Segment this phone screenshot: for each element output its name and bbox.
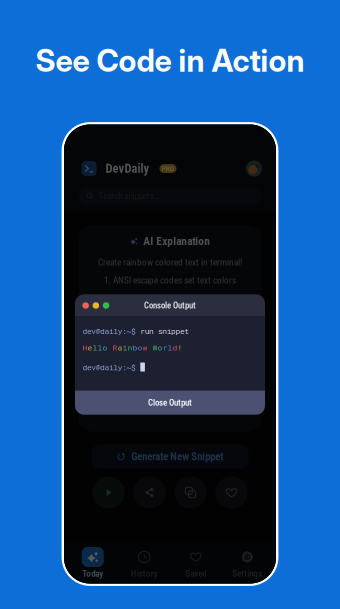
- staticText: Settings: [232, 568, 262, 579]
- staticText: Today: [82, 568, 103, 579]
- staticText: Console Output: [144, 300, 196, 311]
- button[interactable]: Close Output: [75, 391, 265, 415]
- staticText: History: [131, 568, 158, 579]
- staticText: W: [152, 342, 157, 353]
- staticText: DevDaily: [105, 161, 149, 176]
- button[interactable]: Generate New Snippet: [91, 444, 248, 468]
- staticText: PRO: [161, 164, 174, 173]
- button[interactable]: Settings: [221, 546, 273, 579]
- staticText: o: [137, 342, 142, 353]
- button[interactable]: History: [118, 546, 170, 579]
- staticText: Saved: [185, 568, 206, 579]
- staticText: b: [132, 342, 137, 353]
- staticText: H: [82, 342, 87, 353]
- staticText: o: [102, 342, 107, 353]
- staticText: AI Explanation: [143, 234, 210, 248]
- staticText: R: [112, 342, 117, 353]
- staticText: l: [97, 342, 102, 353]
- staticText: See Code in Action: [35, 42, 304, 79]
- staticText: o: [157, 342, 162, 353]
- staticText: d: [172, 342, 177, 353]
- button[interactable]: Saved: [170, 546, 221, 579]
- staticText: l: [167, 342, 172, 353]
- staticText: l: [92, 342, 97, 353]
- staticText: w: [142, 342, 147, 353]
- staticText: Close Output: [148, 397, 192, 408]
- staticText: n: [127, 342, 132, 353]
- button[interactable]: Run snippet: [92, 476, 124, 508]
- button[interactable]: Today: [67, 546, 118, 579]
- button[interactable]: Favorite: [215, 476, 247, 508]
- staticText: Generate New Snippet: [131, 450, 223, 463]
- button[interactable]: Share: [133, 476, 165, 508]
- staticText: dev@daily:~$: [82, 362, 140, 372]
- staticText: i: [122, 342, 127, 353]
- staticText: r: [162, 342, 167, 353]
- button[interactable]: Copy: [174, 476, 206, 508]
- staticText: Search snippets…: [98, 191, 158, 201]
- staticText: e: [87, 342, 92, 353]
- staticText: run snippet: [140, 326, 189, 336]
- staticText: Create rainbow colored text in terminal!: [98, 257, 242, 268]
- staticText: a: [117, 342, 122, 353]
- staticText: 1. ANSI escape codes set text colors: [104, 275, 236, 286]
- staticText: dev@daily:~$: [82, 326, 140, 336]
- staticText: !: [177, 342, 182, 353]
